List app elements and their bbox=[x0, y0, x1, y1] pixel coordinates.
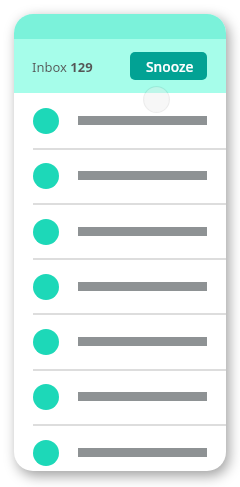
button[interactable]: Snooze bbox=[130, 52, 207, 80]
button[interactable] bbox=[14, 204, 226, 259]
button[interactable] bbox=[14, 148, 226, 203]
button[interactable] bbox=[14, 93, 226, 148]
button[interactable] bbox=[14, 369, 226, 424]
button[interactable] bbox=[14, 259, 226, 314]
button[interactable] bbox=[14, 314, 226, 369]
button[interactable] bbox=[14, 425, 226, 471]
staticText: Snooze bbox=[146, 57, 194, 76]
button[interactable]: Compose bbox=[143, 86, 170, 113]
button[interactable]: Inbox 129 bbox=[32, 58, 93, 76]
